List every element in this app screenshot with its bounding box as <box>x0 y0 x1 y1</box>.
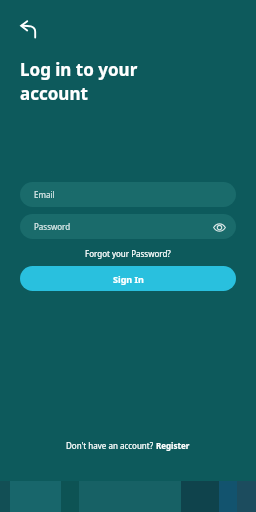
staticText: Sign In <box>113 273 144 285</box>
button[interactable]: Show password <box>210 218 228 236</box>
button[interactable]: Email <box>20 182 236 207</box>
button[interactable]: Back <box>14 14 44 44</box>
button[interactable]: Password <box>20 214 236 239</box>
staticText: Forgot your Password? <box>85 248 171 259</box>
staticText: account <box>20 82 88 105</box>
button[interactable]: Sign In <box>20 266 236 291</box>
staticText: Register <box>156 440 190 451</box>
button[interactable]: Forgot your Password? <box>80 247 176 260</box>
staticText: Email <box>34 189 55 200</box>
staticText: Password <box>34 221 71 232</box>
staticText: Log in to your <box>20 58 138 81</box>
button[interactable]: Don't have an account? <box>0 437 256 454</box>
staticText: Don't have an account? <box>66 440 156 451</box>
